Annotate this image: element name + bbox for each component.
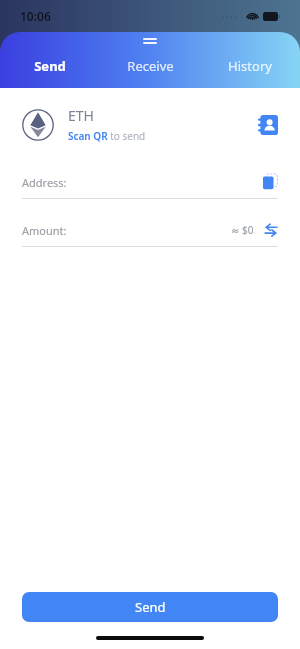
staticText: Receive [127, 57, 174, 75]
button[interactable]: History [200, 44, 300, 88]
button[interactable]: Contacts [258, 115, 278, 135]
staticText: Send [34, 57, 66, 75]
staticText: Scan QR to send [68, 129, 146, 143]
staticText: Address: [22, 175, 67, 190]
staticText: Send [135, 598, 166, 616]
staticText: ETH [68, 106, 94, 125]
button[interactable]: Address: [22, 171, 278, 199]
other: Swap currency [264, 223, 278, 237]
button[interactable]: Send [0, 44, 100, 88]
button[interactable]: Receive [100, 44, 200, 88]
staticText: History [228, 57, 272, 75]
button[interactable]: Amount: [22, 219, 278, 247]
staticText: 10:06 [20, 8, 51, 24]
staticText: ≈ $0 [231, 223, 254, 237]
button[interactable]: Send [22, 592, 278, 622]
staticText: Amount: [22, 223, 67, 238]
button[interactable]: ETH [22, 106, 278, 143]
other: Paste [262, 174, 278, 190]
